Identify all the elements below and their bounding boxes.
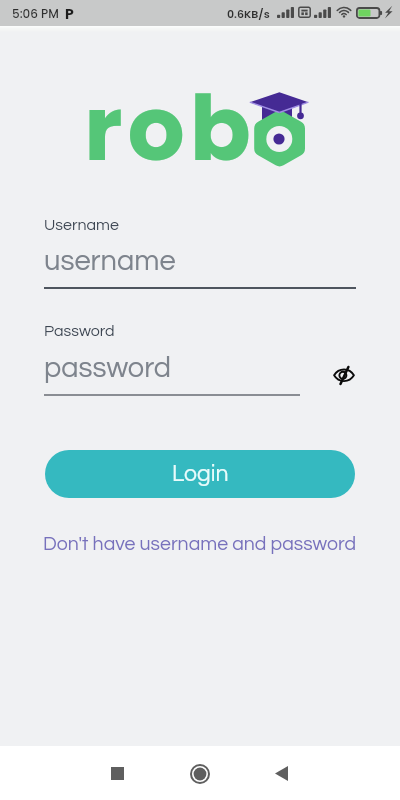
button[interactable]: username	[44, 246, 356, 288]
button[interactable]: password	[44, 353, 300, 395]
staticText: Don't have username and password	[43, 534, 357, 554]
staticText: Login	[172, 462, 229, 486]
staticText: password	[44, 353, 172, 383]
button[interactable]: Back	[257, 749, 305, 797]
button[interactable]: Recents	[93, 749, 141, 797]
staticText: 5:06 PM	[12, 5, 59, 22]
staticText: P	[65, 4, 74, 24]
staticText: 0.6KB/s	[227, 6, 270, 21]
button[interactable]: Show password	[326, 357, 362, 393]
button[interactable]: Home	[176, 750, 224, 798]
staticText: Username	[44, 217, 119, 233]
staticText: rob	[84, 66, 256, 166]
staticText: username	[44, 246, 176, 276]
button[interactable]: Login	[45, 450, 355, 498]
button[interactable]: Don't have username and password	[40, 530, 360, 558]
staticText: Password	[44, 323, 115, 339]
